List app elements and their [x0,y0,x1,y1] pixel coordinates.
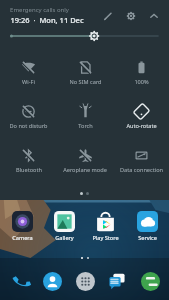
button[interactable]: Wi-Fi [0,51,57,95]
button[interactable]: Collapse [147,9,161,23]
button[interactable]: Brightness [10,25,159,47]
button[interactable]: Auto-rotate [113,95,169,139]
button[interactable]: Torch [57,95,113,139]
button[interactable]: Settings [124,9,138,23]
button[interactable]: Apps [72,268,98,294]
button[interactable]: Do not disturb [0,95,57,139]
button[interactable]: Browser [137,268,163,294]
button[interactable]: Gallery [44,210,84,242]
button[interactable]: Data connection [113,139,169,183]
button[interactable]: Aeroplane mode [57,139,113,183]
button[interactable]: Phone [7,268,33,294]
button[interactable]: Service [127,210,167,242]
staticText: Play Store [92,234,119,242]
button[interactable]: Camera [2,210,42,242]
staticText: 100% [134,78,149,86]
staticText: Bluetooth [16,166,42,174]
button[interactable]: Play Store [85,210,125,242]
staticText: Torch [78,122,93,130]
staticText: Service [138,234,157,242]
staticText: 19:26 · Mon, 11 Dec [10,15,84,25]
button[interactable]: 100% [113,51,169,95]
staticText: Emergency calls only [10,6,69,14]
staticText: Data connection [120,166,163,174]
staticText: Do not disturb [9,122,48,130]
button[interactable]: Edit [101,9,115,23]
button[interactable]: Bluetooth [0,139,57,183]
button[interactable]: Contacts [39,268,65,294]
staticText: Gallery [55,234,74,242]
staticText: Camera [12,234,33,242]
staticText: Aeroplane mode [63,166,107,174]
staticText: Wi-Fi [22,78,35,86]
staticText: Auto-rotate [126,122,157,130]
button[interactable]: Messaging [104,268,130,294]
button[interactable]: No SIM card [57,51,113,95]
staticText: No SIM card [69,78,102,86]
